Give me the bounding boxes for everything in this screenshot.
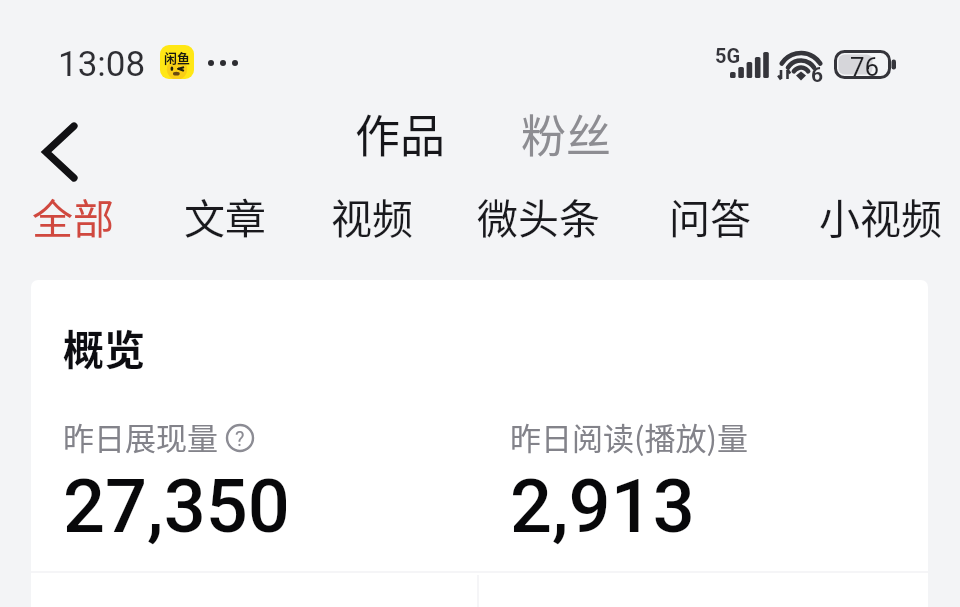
staticText: 76	[850, 52, 880, 82]
button[interactable]: 微头条	[477, 186, 600, 245]
staticText: 作品	[355, 101, 446, 166]
button[interactable]: 作品	[355, 101, 446, 166]
staticText: 小视频	[819, 186, 942, 245]
staticText: 微头条	[477, 186, 600, 245]
button[interactable]: 昨日展现量	[63, 414, 483, 550]
staticText: ?	[235, 427, 245, 450]
button[interactable]: 全部	[32, 186, 114, 245]
staticText: 闲鱼	[164, 48, 191, 67]
staticText: 粉丝	[521, 101, 612, 166]
staticText: 文章	[184, 186, 266, 245]
staticText: 问答	[669, 186, 751, 245]
staticText: 全部	[32, 186, 114, 245]
staticText: 6	[811, 63, 824, 88]
staticText: 昨日阅读(播放)量	[510, 414, 748, 459]
button[interactable]: 视频	[331, 186, 413, 245]
staticText: 27,350	[63, 463, 290, 550]
button[interactable]: 昨日阅读(播放)量	[510, 414, 928, 550]
button[interactable]: 粉丝	[521, 101, 612, 166]
button[interactable]: 小视频	[819, 186, 942, 245]
staticText: 5G	[715, 44, 741, 67]
staticText: 昨日展现量	[63, 414, 218, 459]
staticText: 13:08	[58, 44, 146, 85]
button[interactable]: 问答	[669, 186, 751, 245]
button[interactable]: Help	[226, 424, 254, 452]
staticText: 视频	[331, 186, 413, 245]
staticText: 概览	[63, 317, 145, 376]
button[interactable]: Back	[18, 112, 80, 192]
staticText: 2,913	[510, 463, 695, 550]
button[interactable]: 文章	[184, 186, 266, 245]
